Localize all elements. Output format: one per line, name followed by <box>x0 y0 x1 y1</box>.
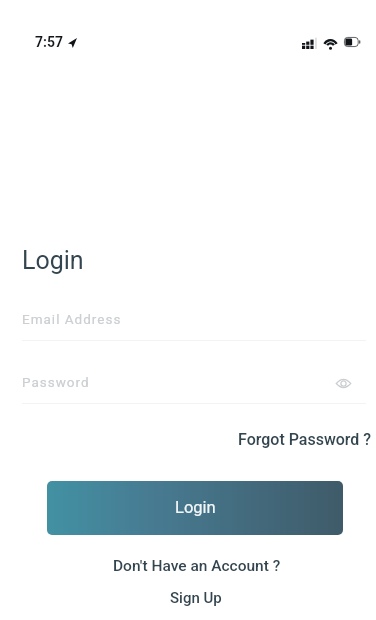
staticText: Don't Have an Account ? <box>113 557 281 575</box>
button[interactable]: Don't Have an Account ? <box>109 553 285 579</box>
other: Location active <box>68 38 77 48</box>
button[interactable]: Show password <box>331 371 355 395</box>
staticText: Email Address <box>22 311 366 327</box>
staticText: Login <box>175 498 216 517</box>
staticText: Forgot Password ? <box>238 430 372 449</box>
button[interactable]: Login <box>47 481 343 535</box>
button[interactable]: Forgot Password ? <box>234 426 376 453</box>
staticText: Sign Up <box>170 589 222 607</box>
button[interactable]: Sign Up <box>166 585 226 611</box>
staticText: Password <box>22 374 366 390</box>
staticText: 7:57 <box>35 34 64 50</box>
staticText: Login <box>22 246 84 275</box>
